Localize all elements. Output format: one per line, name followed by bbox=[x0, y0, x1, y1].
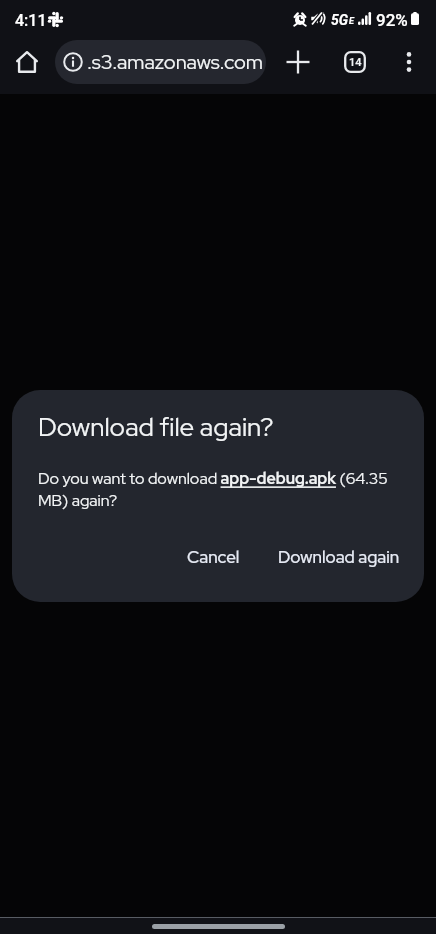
staticText: 92% bbox=[376, 10, 408, 30]
button[interactable]: Download again bbox=[266, 538, 412, 576]
staticText: Download file again? bbox=[38, 410, 274, 444]
staticText: 14 bbox=[349, 56, 362, 69]
button[interactable]: More options bbox=[387, 38, 431, 86]
staticText: Do you want to download app-debug.apk (6… bbox=[38, 468, 400, 511]
button[interactable]: Switch or close tabs, 14 open bbox=[331, 38, 379, 86]
staticText: Cancel bbox=[187, 546, 240, 568]
staticText: 4:11 bbox=[15, 11, 47, 30]
staticText: .s3.amazonaws.com bbox=[87, 49, 263, 75]
button[interactable]: Cancel bbox=[175, 538, 252, 576]
staticText: Download again bbox=[278, 546, 400, 568]
staticText: 5G bbox=[331, 12, 349, 28]
button[interactable]: .s3.amazonaws.com bbox=[55, 40, 266, 84]
staticText: E bbox=[349, 16, 354, 27]
button[interactable]: Home bbox=[0, 38, 53, 86]
button[interactable]: New tab bbox=[274, 38, 322, 86]
